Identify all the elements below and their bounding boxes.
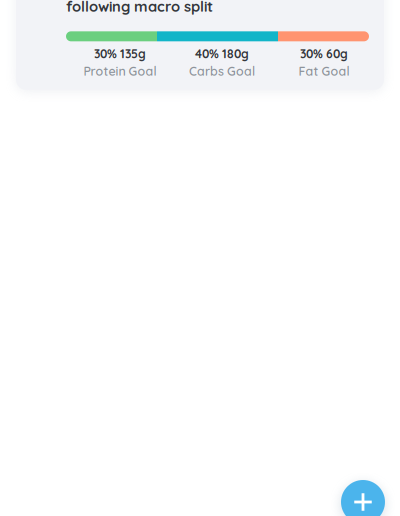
staticText: Carbs Goal <box>189 63 255 79</box>
staticText: following macro split <box>66 0 213 15</box>
staticText: Protein Goal <box>83 63 156 79</box>
button[interactable]: Add <box>341 480 385 516</box>
staticText: 30% 60g <box>300 46 348 61</box>
staticText: Fat Goal <box>298 63 349 79</box>
staticText: 40% 180g <box>195 46 249 61</box>
staticText: 30% 135g <box>94 46 146 61</box>
